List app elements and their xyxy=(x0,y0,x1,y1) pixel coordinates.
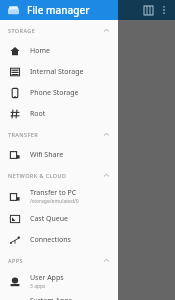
button[interactable]: Home xyxy=(0,40,118,61)
button[interactable]: STORAGE xyxy=(0,20,118,40)
button[interactable]: More options xyxy=(157,3,171,17)
staticText: Root xyxy=(30,109,46,119)
staticText: Home xyxy=(30,46,50,56)
button[interactable]: Transfer to PC xyxy=(0,185,118,208)
staticText: Cast Queue xyxy=(30,214,69,224)
button[interactable]: Grid view xyxy=(139,1,157,19)
button[interactable]: System Apps xyxy=(0,293,118,300)
button[interactable]: Internal Storage xyxy=(0,61,118,82)
staticText: TRANSFER xyxy=(8,131,39,138)
staticText: System Apps xyxy=(30,296,73,300)
staticText: File manager xyxy=(27,3,90,17)
staticText: NETWORK & CLOUD xyxy=(8,172,67,179)
staticText: 3 apps xyxy=(30,283,46,290)
staticText: Connections xyxy=(30,235,71,245)
staticText: /storage/emulated/0 xyxy=(30,198,79,205)
button[interactable]: Cast Queue xyxy=(0,208,118,229)
button[interactable]: APPS xyxy=(0,250,118,270)
staticText: STORAGE xyxy=(8,27,36,34)
button[interactable]: Phone Storage xyxy=(0,82,118,103)
button[interactable]: Connections xyxy=(0,229,118,250)
button[interactable]: NETWORK & CLOUD xyxy=(0,165,118,185)
staticText: Transfer to PC xyxy=(30,188,77,198)
button[interactable]: Root xyxy=(0,103,118,124)
button[interactable]: TRANSFER xyxy=(0,124,118,144)
staticText: Wifi Share xyxy=(30,150,64,160)
button[interactable]: App icon xyxy=(5,2,21,18)
staticText: Internal Storage xyxy=(30,67,84,77)
staticText: APPS xyxy=(8,257,23,264)
button[interactable]: User Apps xyxy=(0,270,118,293)
staticText: Phone Storage xyxy=(30,88,79,98)
button[interactable]: Wifi Share xyxy=(0,144,118,165)
staticText: User Apps xyxy=(30,273,64,283)
